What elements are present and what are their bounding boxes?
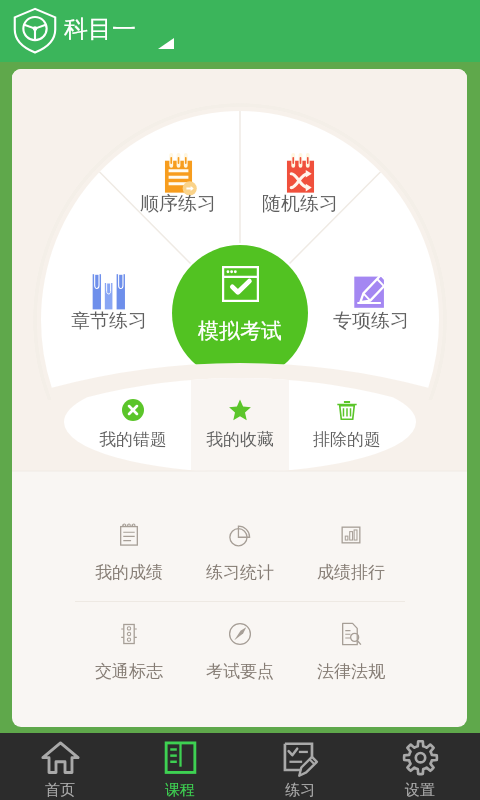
- staticText: 我的错题: [99, 429, 167, 450]
- staticText: 专项练习: [333, 309, 409, 333]
- button[interactable]: 模拟考试: [172, 245, 308, 381]
- staticText: 设置: [405, 781, 435, 800]
- button[interactable]: 练习: [240, 733, 360, 800]
- button[interactable]: 我的错题: [85, 394, 181, 454]
- button[interactable]: 首页: [0, 733, 120, 800]
- button[interactable]: 成绩排行: [295, 513, 406, 583]
- staticText: 随机练习: [262, 192, 338, 216]
- button[interactable]: 我的收藏: [192, 394, 288, 454]
- button[interactable]: 专项练习: [323, 265, 419, 350]
- staticText: 练习: [285, 781, 315, 800]
- button[interactable]: 法律法规: [295, 612, 406, 682]
- staticText: 练习统计: [206, 562, 274, 583]
- staticText: 交通标志: [95, 661, 163, 682]
- staticText: 顺序练习: [140, 192, 216, 216]
- button[interactable]: 章节练习: [61, 265, 157, 350]
- button[interactable]: 随机练习: [252, 148, 348, 233]
- button[interactable]: 设置: [360, 733, 480, 800]
- button[interactable]: 考试要点: [184, 612, 295, 682]
- other: Choose subject: [158, 38, 174, 49]
- staticText: 科目一: [64, 14, 136, 44]
- staticText: 法律法规: [317, 661, 385, 682]
- button[interactable]: 练习统计: [184, 513, 295, 583]
- button[interactable]: 科目一: [64, 14, 188, 52]
- button[interactable]: 顺序练习: [130, 148, 226, 233]
- staticText: 我的收藏: [206, 429, 274, 450]
- button[interactable]: App logo: [13, 7, 57, 54]
- staticText: 考试要点: [206, 661, 274, 682]
- staticText: 排除的题: [313, 429, 381, 450]
- staticText: 成绩排行: [317, 562, 385, 583]
- staticText: 课程: [165, 781, 195, 800]
- button[interactable]: 交通标志: [74, 612, 184, 682]
- button[interactable]: 排除的题: [299, 394, 395, 454]
- button[interactable]: 我的成绩: [74, 513, 184, 583]
- button[interactable]: 课程: [120, 733, 240, 800]
- staticText: 章节练习: [71, 309, 147, 333]
- staticText: 首页: [45, 781, 75, 800]
- staticText: 模拟考试: [198, 318, 282, 344]
- staticText: 我的成绩: [95, 562, 163, 583]
